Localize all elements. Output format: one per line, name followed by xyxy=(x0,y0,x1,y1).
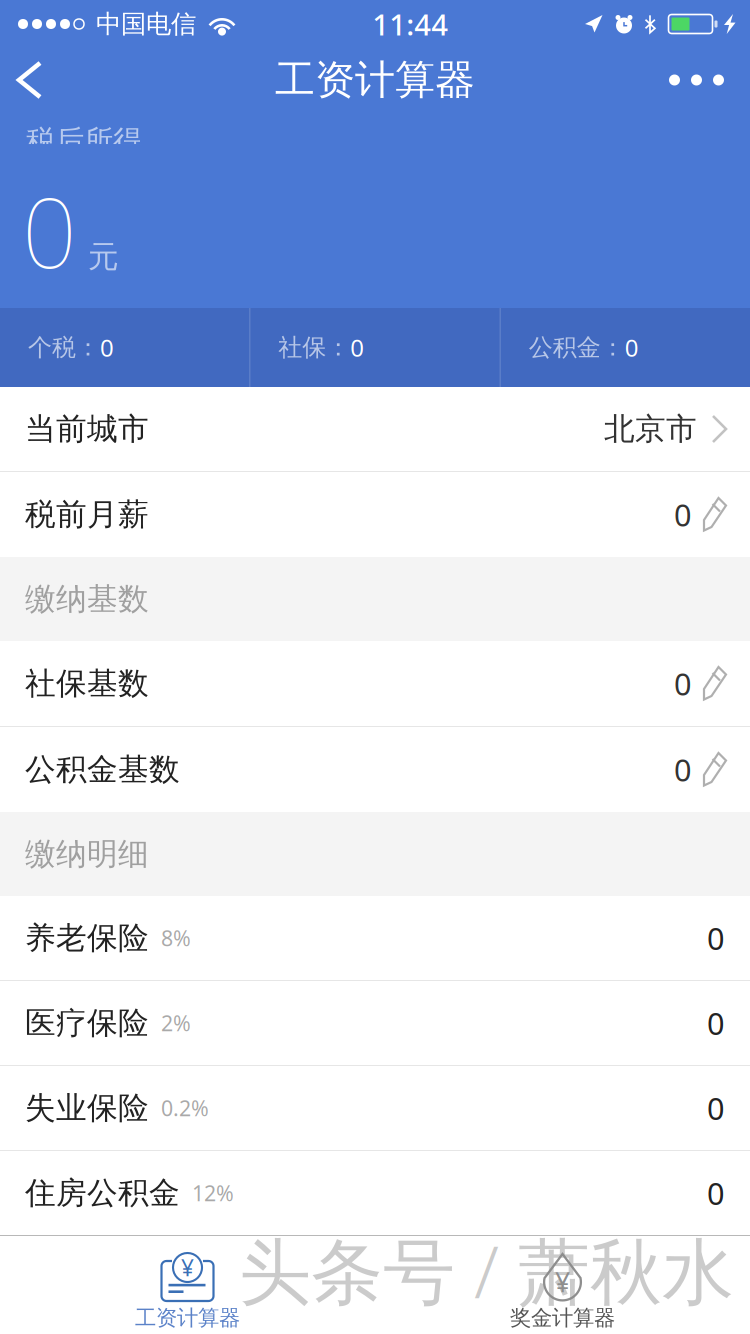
staticText: 社保： xyxy=(278,333,350,362)
button[interactable]: 医疗保险 xyxy=(0,981,750,1065)
button[interactable]: 住房公积金 xyxy=(0,1151,750,1235)
staticText: 0 xyxy=(674,663,692,704)
staticText: 公积金基数 xyxy=(25,751,180,788)
staticText: 北京市 xyxy=(604,410,697,448)
staticText: 0.2% xyxy=(149,1094,209,1122)
button[interactable]: 当前城市 xyxy=(0,387,750,471)
staticText: 12% xyxy=(180,1179,234,1207)
staticText: 元 xyxy=(88,238,119,275)
staticText: 11:44 xyxy=(372,4,448,43)
staticText: ¥ xyxy=(555,1264,570,1300)
staticText: 养老保险 xyxy=(25,919,149,957)
staticText: 0 xyxy=(674,749,692,790)
staticText: 0 xyxy=(707,918,725,958)
staticText: 税前月薪 xyxy=(25,496,149,533)
staticText: 住房公积金 xyxy=(25,1174,180,1212)
staticText: 0 xyxy=(707,1088,725,1128)
button[interactable]: 公积金基数 xyxy=(0,727,750,812)
staticText: 0 xyxy=(707,1173,725,1213)
staticText: 医疗保险 xyxy=(25,1004,149,1042)
staticText: 缴纳基数 xyxy=(25,580,149,618)
staticText: 个税： xyxy=(28,333,100,362)
staticText: 税后所得 xyxy=(26,123,142,159)
button[interactable]: 养老保险 xyxy=(0,896,750,980)
staticText: 0 xyxy=(22,167,77,294)
button[interactable]: ¥ xyxy=(0,1236,375,1334)
staticText: ¥ xyxy=(181,1252,194,1282)
staticText: 中国电信 xyxy=(96,8,196,39)
staticText: 工资计算器 xyxy=(275,55,475,104)
button[interactable]: 失业保险 xyxy=(0,1066,750,1150)
staticText: 8% xyxy=(149,924,191,952)
staticText: 0 xyxy=(100,332,114,363)
button[interactable]: More options xyxy=(645,48,750,112)
staticText: 工资计算器 xyxy=(135,1305,240,1331)
staticText: 0 xyxy=(625,332,639,363)
staticText: 缴纳明细 xyxy=(25,835,149,873)
staticText: 0 xyxy=(707,1003,725,1043)
staticText: 2% xyxy=(149,1009,191,1037)
button[interactable]: 税前月薪 xyxy=(0,472,750,557)
staticText: 公积金： xyxy=(529,333,625,362)
staticText: 奖金计算器 xyxy=(510,1305,615,1331)
button[interactable]: 社保基数 xyxy=(0,641,750,726)
staticText: 失业保险 xyxy=(25,1089,149,1127)
staticText: 头条号 / 萧秋水 xyxy=(239,1222,734,1318)
button[interactable]: ¥ xyxy=(375,1236,750,1334)
staticText: 0 xyxy=(350,332,364,363)
staticText: 0 xyxy=(674,494,692,535)
staticText: 当前城市 xyxy=(25,410,149,448)
button[interactable]: Back xyxy=(0,48,67,112)
staticText: 社保基数 xyxy=(25,665,149,702)
